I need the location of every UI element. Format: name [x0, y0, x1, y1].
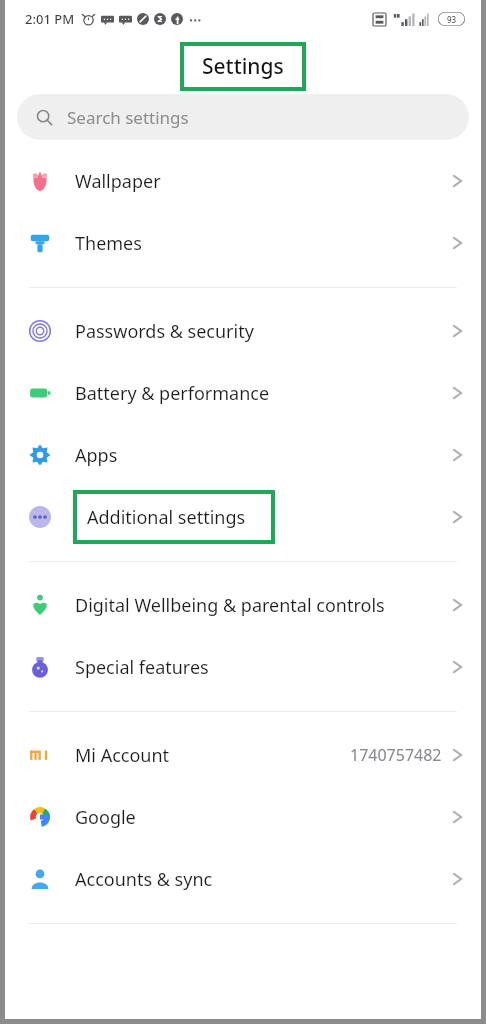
staticText: Settings: [202, 52, 284, 81]
button[interactable]: Additional settings: [5, 486, 481, 548]
button[interactable]: Accounts & sync: [5, 848, 481, 910]
button[interactable]: Search settings: [17, 94, 469, 140]
staticText: Battery & performance: [75, 381, 452, 406]
button[interactable]: Mi Account: [5, 724, 481, 786]
button[interactable]: Passwords & security: [5, 300, 481, 362]
staticText: Digital Wellbeing & parental controls: [75, 593, 452, 618]
button[interactable]: Apps: [5, 424, 481, 486]
button[interactable]: Google: [5, 786, 481, 848]
button[interactable]: Wallpaper: [5, 150, 481, 212]
staticText: Special features: [75, 655, 452, 680]
staticText: Passwords & security: [75, 319, 452, 344]
staticText: 2:01 PM: [25, 10, 75, 28]
staticText: 93: [447, 14, 457, 25]
button[interactable]: Themes: [5, 212, 481, 274]
staticText: Google: [75, 805, 452, 830]
staticText: 1740757482: [350, 744, 442, 766]
staticText: Search settings: [67, 106, 189, 129]
button[interactable]: Special features: [5, 636, 481, 698]
staticText: Apps: [75, 443, 452, 468]
staticText: Wallpaper: [75, 169, 452, 194]
staticText: Additional settings: [87, 505, 246, 530]
staticText: Themes: [75, 231, 452, 256]
button[interactable]: Digital Wellbeing & parental controls: [5, 574, 481, 636]
button[interactable]: Battery & performance: [5, 362, 481, 424]
staticText: Accounts & sync: [75, 867, 452, 892]
staticText: Mi Account: [75, 743, 350, 768]
